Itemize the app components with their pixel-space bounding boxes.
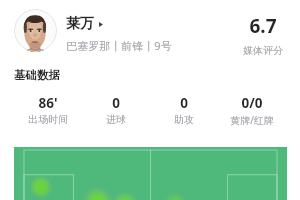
button[interactable]: 莱万 [66, 15, 103, 33]
staticText: 0 [180, 94, 188, 112]
staticText: 进球 [106, 113, 126, 126]
staticText: 0/0 [241, 94, 263, 112]
button[interactable]: 0/0 [218, 94, 286, 127]
button[interactable]: 0 [82, 94, 150, 126]
staticText: 媒体评分 [233, 44, 293, 57]
button[interactable]: 6.7 [233, 10, 293, 58]
staticText: 出场时间 [28, 113, 68, 126]
staticText: 黄牌/红牌 [230, 113, 274, 127]
staticText: 86' [38, 94, 58, 112]
button[interactable]: 86' [14, 94, 82, 126]
button[interactable]: 基础数据 [14, 68, 60, 82]
staticText: 助攻 [174, 113, 194, 126]
button[interactable]: Touch heat map [14, 147, 287, 200]
button[interactable]: 0 [150, 94, 218, 126]
staticText: 莱万 [66, 15, 94, 33]
staticText: 巴塞罗那丨前锋丨9号 [66, 38, 172, 53]
button[interactable]: Player photo [14, 9, 57, 52]
staticText: 0 [112, 94, 120, 112]
staticText: 基础数据 [14, 68, 60, 82]
staticText: 6.7 [233, 13, 293, 39]
